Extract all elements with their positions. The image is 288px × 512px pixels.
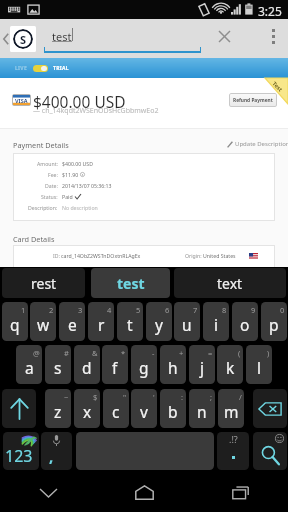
staticText: e <box>68 314 77 335</box>
staticText: 6 <box>165 305 170 315</box>
button[interactable]: / <box>218 389 244 428</box>
staticText: q <box>10 314 20 335</box>
button[interactable]: $ <box>74 389 100 428</box>
staticText: r <box>98 314 105 335</box>
button[interactable]: ) <box>246 345 272 384</box>
button[interactable]: 4 <box>88 302 114 341</box>
staticText: Fee: <box>48 171 58 178</box>
staticText: t <box>127 314 133 335</box>
staticText: 1 <box>21 305 26 315</box>
button[interactable]: 6 <box>146 302 172 341</box>
staticText: Update Description <box>235 140 288 148</box>
button[interactable]: 5 <box>117 302 143 341</box>
button[interactable]: 3 <box>59 302 85 341</box>
button[interactable]: 0 <box>261 302 287 341</box>
button[interactable]: 1 <box>2 302 28 341</box>
staticText: TRIAL <box>53 65 69 72</box>
button[interactable]: Clear search <box>206 19 242 58</box>
button[interactable]: Update Description <box>227 140 288 148</box>
staticText: United States <box>203 252 236 259</box>
staticText: & <box>92 348 98 358</box>
staticText: $400.00 USD <box>62 160 93 167</box>
button[interactable]: LIVE <box>15 65 69 72</box>
button[interactable]: - <box>131 345 157 384</box>
staticText: 5 <box>136 305 141 315</box>
staticText: d <box>82 357 92 378</box>
button[interactable]: Navigate up <box>0 19 40 58</box>
staticText: @ <box>33 348 40 358</box>
button[interactable]: Refund Payment <box>229 93 277 107</box>
button[interactable]: + <box>160 345 186 384</box>
staticText: z <box>54 401 62 422</box>
staticText: " <box>123 392 127 402</box>
staticText: g <box>139 357 149 378</box>
button[interactable]: ' <box>131 389 157 428</box>
staticText: 9 <box>251 305 256 315</box>
staticText: Paid <box>62 193 73 200</box>
staticText: 3:25 <box>258 3 282 19</box>
staticText: / <box>239 392 242 402</box>
staticText: u <box>182 314 192 335</box>
staticText: v <box>140 401 148 422</box>
staticText: k <box>226 357 235 378</box>
staticText: # <box>64 348 69 358</box>
button[interactable]: Back <box>0 471 96 512</box>
button[interactable]: Numbers and symbols <box>3 432 39 470</box>
button[interactable]: rest <box>2 268 85 298</box>
staticText: Refund Payment <box>233 97 273 104</box>
staticText: text <box>217 274 243 293</box>
staticText: h <box>168 357 178 378</box>
button[interactable]: 8 <box>203 302 229 341</box>
button[interactable]: * <box>102 345 128 384</box>
button[interactable]: 7 <box>174 302 200 341</box>
button[interactable]: Recent apps <box>192 471 288 512</box>
staticText: $11.90 <box>62 171 79 178</box>
button[interactable]: Search <box>253 432 287 470</box>
button[interactable]: & <box>74 345 100 384</box>
button[interactable]: ~ <box>45 389 71 428</box>
button[interactable]: " <box>103 389 129 428</box>
staticText: j <box>200 357 204 378</box>
staticText: test <box>117 274 145 293</box>
staticText: , <box>49 446 54 466</box>
staticText: + <box>179 348 184 358</box>
staticText: ID: <box>53 252 60 259</box>
staticText: Amount: <box>37 160 58 167</box>
button[interactable]: : <box>160 389 186 428</box>
staticText: LIVE <box>15 65 27 72</box>
staticText: 2 <box>49 305 54 315</box>
button[interactable]: test <box>91 268 170 298</box>
button[interactable]: = <box>189 345 215 384</box>
button[interactable]: @ <box>16 345 42 384</box>
staticText: Status: <box>41 193 58 200</box>
button[interactable]: # <box>45 345 71 384</box>
staticText: ( <box>238 348 241 358</box>
button[interactable]: Shift <box>2 389 36 428</box>
staticText: y <box>155 314 163 335</box>
staticText: Test <box>271 80 285 93</box>
button[interactable]: Delete <box>253 389 287 428</box>
staticText: $400.00 USD <box>33 91 126 112</box>
staticText: 0 <box>280 305 285 315</box>
staticText: .!? <box>229 433 238 445</box>
button[interactable]: Period and punctuation <box>217 432 249 470</box>
button[interactable]: ( <box>217 345 243 384</box>
button[interactable]: 2 <box>30 302 56 341</box>
staticText: rest <box>31 274 57 293</box>
button[interactable]: text <box>174 268 286 298</box>
staticText: a <box>25 357 34 378</box>
button[interactable]: More options <box>258 19 288 58</box>
staticText: = <box>208 348 213 358</box>
button[interactable]: 9 <box>232 302 258 341</box>
staticText: p <box>269 314 279 335</box>
staticText: No description <box>62 204 98 211</box>
button[interactable]: Comma, voice input <box>41 432 72 470</box>
button[interactable]: ; <box>189 389 215 428</box>
staticText: 123 <box>5 445 33 467</box>
staticText: o <box>240 314 250 335</box>
button[interactable]: Home <box>96 471 192 512</box>
staticText: 4 <box>107 305 112 315</box>
staticText: f <box>112 357 118 378</box>
staticText: x <box>83 401 92 422</box>
